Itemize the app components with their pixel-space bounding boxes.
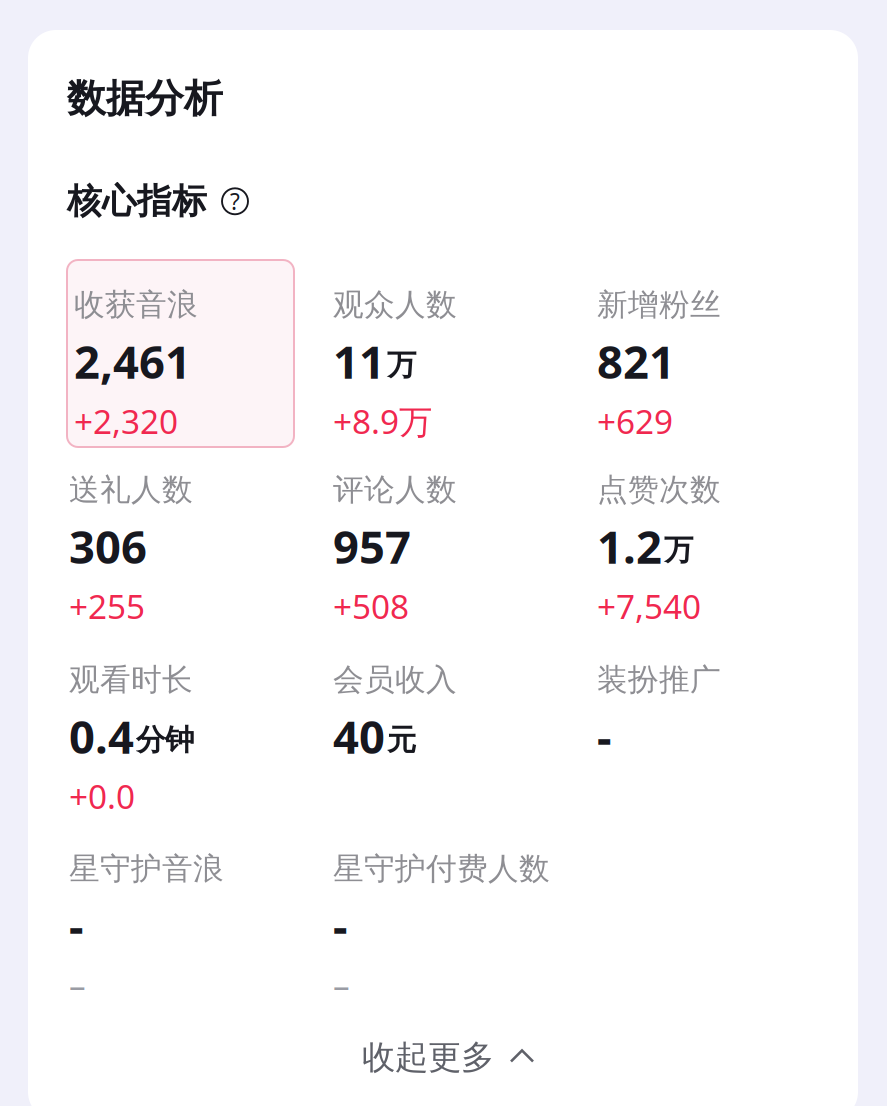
button[interactable]: 观众人数 [333,286,573,458]
staticText: 星守护音浪 [69,850,224,888]
staticText: 收起更多 [362,1037,494,1078]
button[interactable]: 装扮推广 [597,661,837,833]
staticText: +8.9万 [333,399,432,443]
staticText: 分钟 [136,722,194,758]
staticText: - [333,895,348,955]
staticText: 评论人数 [333,471,457,509]
staticText: 万 [664,532,693,568]
staticText: +255 [69,584,145,628]
staticText: 40 [333,706,385,766]
staticText: 306 [69,516,147,576]
staticText: 元 [387,722,416,758]
staticText: +0.0 [69,774,135,818]
button[interactable]: 新增粉丝 [597,286,837,458]
staticText: - [69,895,84,955]
button[interactable]: 核心指标 [67,176,248,227]
staticText: 点赞次数 [597,471,721,509]
staticText: +629 [597,399,673,443]
staticText: 星守护付费人数 [333,850,550,888]
staticText: 收获音浪 [74,286,198,324]
staticText: 0.4 [69,706,134,766]
staticText: 装扮推广 [597,661,721,699]
staticText: 新增粉丝 [597,286,721,324]
staticText: 2,461 [74,331,191,391]
staticText: 数据分析 [67,75,223,122]
button[interactable]: 送礼人数 [69,471,309,643]
staticText: +7,540 [597,584,701,628]
button[interactable]: 评论人数 [333,471,573,643]
button[interactable]: 星守护付费人数 [333,850,573,1022]
staticText: – [333,963,350,1007]
staticText: – [69,963,86,1007]
staticText: 万 [387,347,416,383]
staticText: 送礼人数 [69,471,193,509]
staticText: 11 [333,331,385,391]
button[interactable]: 观看时长 [69,661,309,833]
staticText: 1.2 [597,516,662,576]
staticText: +2,320 [74,399,178,443]
staticText: 821 [597,331,675,391]
staticText: 957 [333,516,411,576]
staticText: 会员收入 [333,661,457,699]
staticText: - [597,706,612,766]
button[interactable]: 点赞次数 [597,471,837,643]
staticText: ? [230,186,240,216]
staticText: +508 [333,584,409,628]
button[interactable]: 会员收入 [333,661,573,833]
button[interactable]: 收起更多 [344,1031,552,1084]
staticText: 观众人数 [333,286,457,324]
button[interactable]: 星守护音浪 [69,850,309,1022]
staticText: 核心指标 [67,180,207,223]
staticText: 观看时长 [69,661,193,699]
button[interactable]: 收获音浪 [69,286,309,458]
